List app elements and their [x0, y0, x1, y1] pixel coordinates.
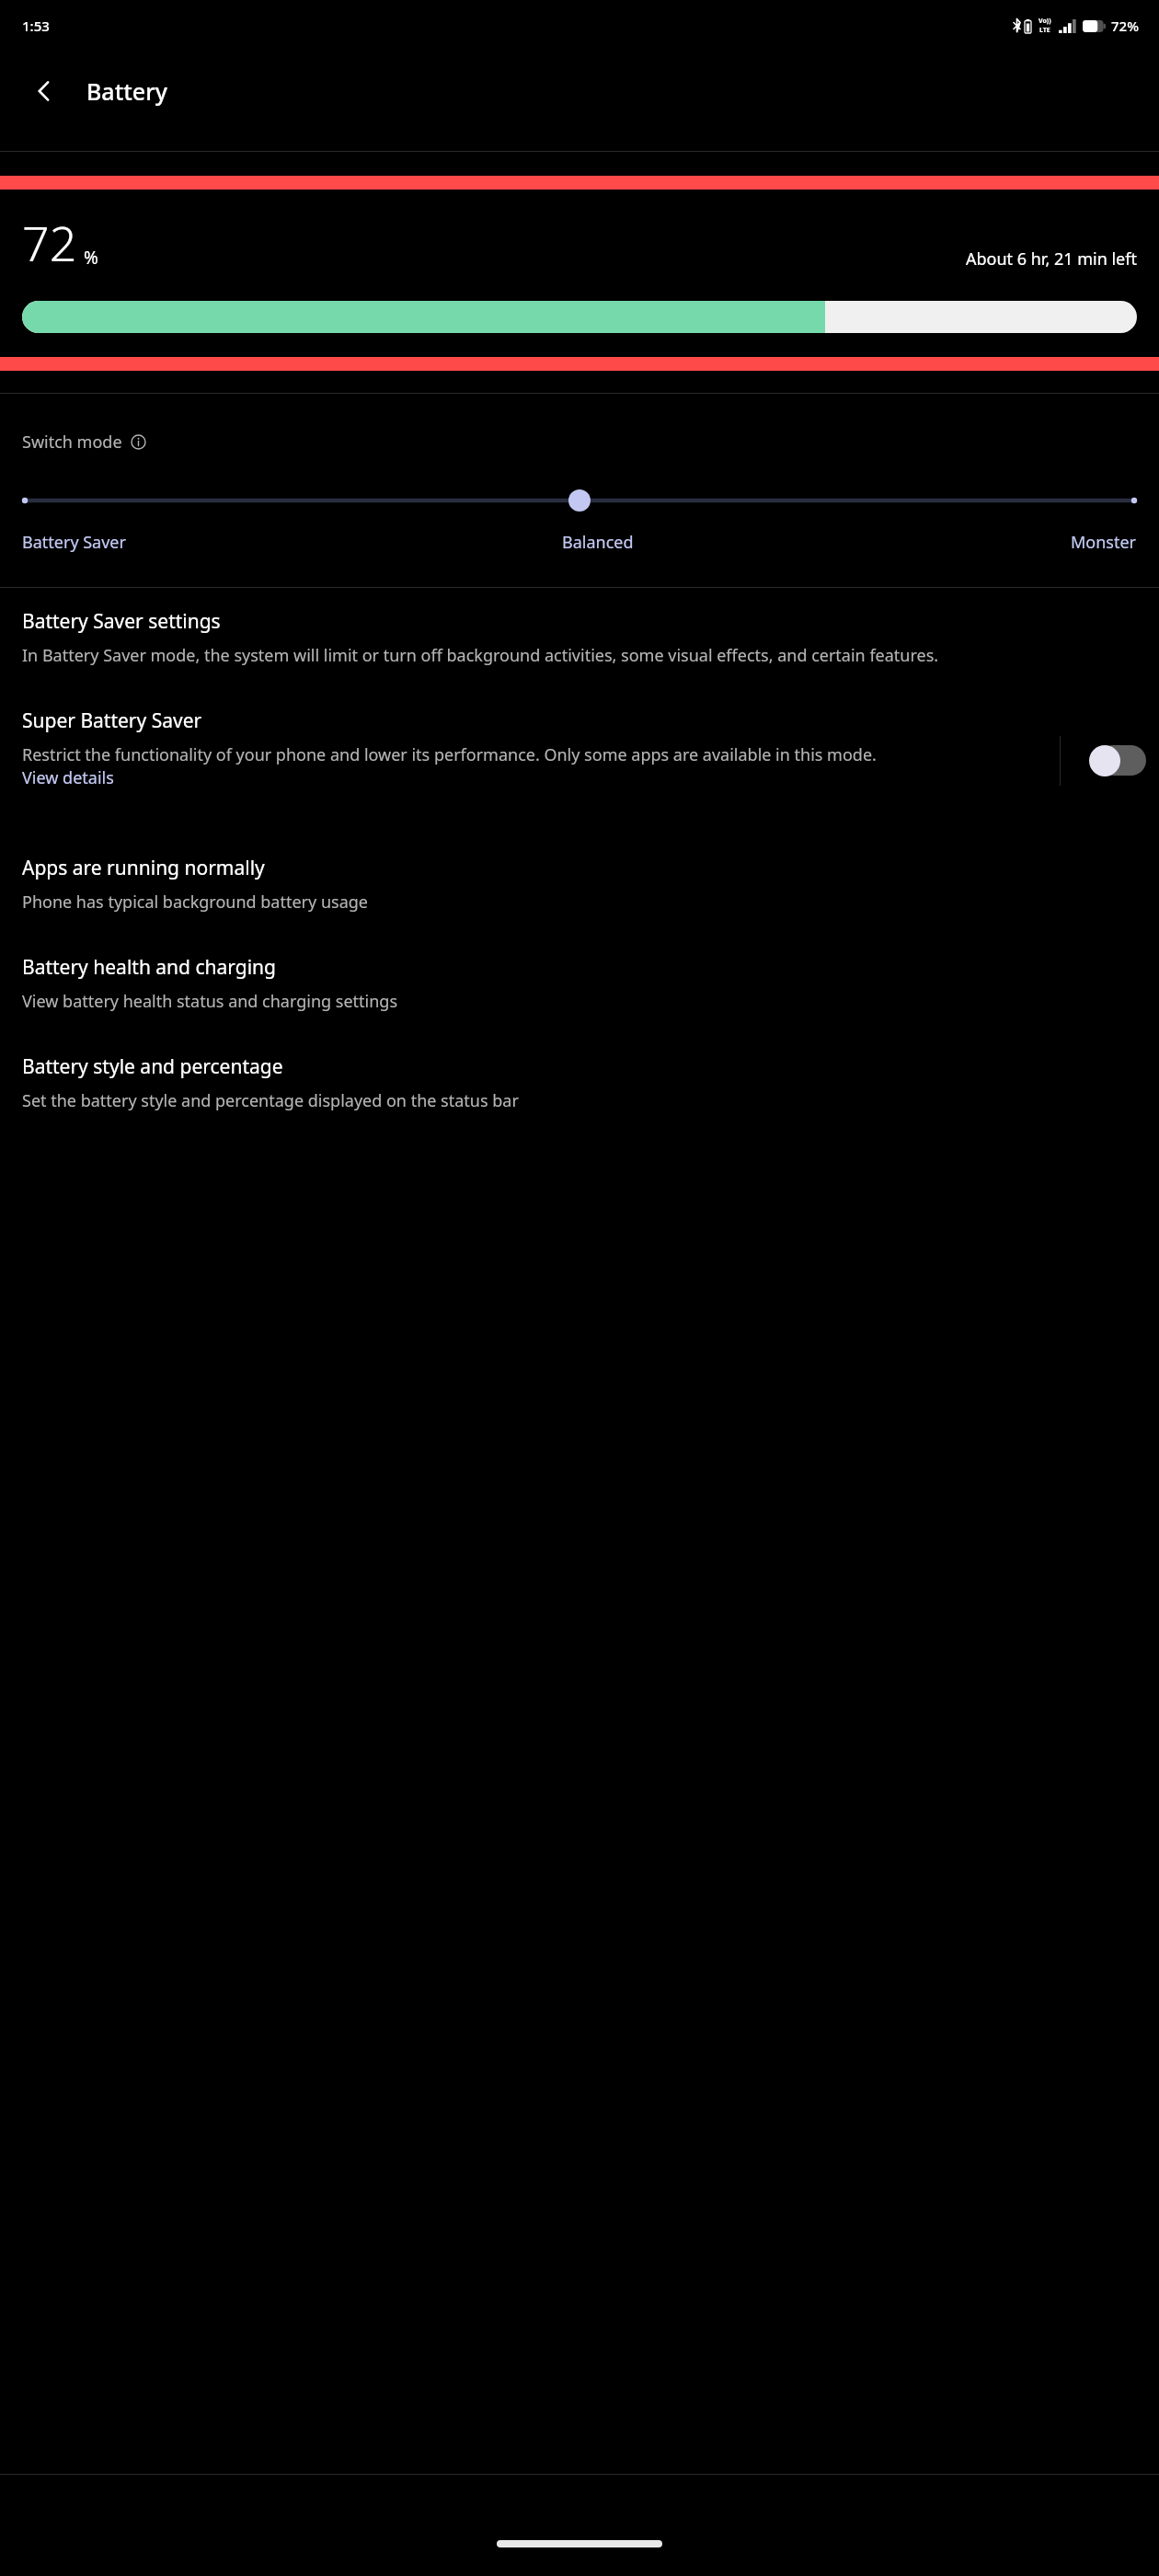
button[interactable]: Battery style and percentage [0, 1033, 1159, 1133]
staticText: 72% [1111, 17, 1139, 35]
staticText: Restrict the functionality of your phone… [22, 743, 877, 766]
button[interactable]: Battery Saver settings [0, 588, 1159, 687]
staticText: Battery health and charging [22, 954, 276, 981]
button[interactable] [568, 489, 591, 512]
staticText: View battery health status and charging … [22, 990, 398, 1013]
button[interactable]: Switch mode [0, 394, 1159, 587]
button[interactable]: Super Battery Saver [0, 687, 1159, 834]
staticText: 1:53 [22, 17, 50, 35]
staticText: LTE [1039, 26, 1050, 35]
staticText: Battery Saver settings [22, 608, 221, 635]
staticText: Balanced [562, 531, 634, 554]
staticText: 72 [22, 210, 77, 275]
button[interactable]: View details [22, 766, 114, 789]
other: Info [131, 434, 146, 450]
staticText: Battery Saver [22, 531, 126, 554]
button[interactable]: Super Battery Saver toggle [1058, 687, 1159, 834]
staticText: Battery style and percentage [22, 1053, 283, 1080]
staticText: Vo)) [1039, 17, 1051, 26]
staticText: Phone has typical background battery usa… [22, 891, 368, 914]
staticText: Set the battery style and percentage dis… [22, 1089, 519, 1112]
staticText: About 6 hr, 21 min left [966, 247, 1137, 270]
staticText: In Battery Saver mode, the system will l… [22, 644, 939, 667]
staticText: Apps are running normally [22, 855, 265, 881]
staticText: Switch mode [22, 431, 122, 454]
staticText: Battery [86, 75, 167, 107]
staticText: Monster [1071, 531, 1137, 554]
button[interactable]: Back [18, 65, 70, 117]
button[interactable]: Battery health and charging [0, 934, 1159, 1033]
staticText: Super Battery Saver [22, 707, 202, 734]
button[interactable]: Apps are running normally [0, 834, 1159, 934]
staticText: % [84, 246, 98, 270]
